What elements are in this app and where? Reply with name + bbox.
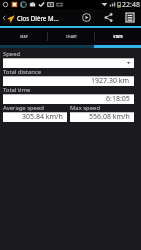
staticText: STATS [113,34,123,38]
button[interactable]: 305.84 km/h [3,112,67,122]
staticText: 22:48 [122,0,140,9]
button[interactable] [3,58,134,68]
staticText: CHART [66,34,77,38]
staticText: 1927.30 km [91,76,130,86]
button[interactable]: 556.08 km/h [70,112,134,122]
staticText: Max speed [70,104,101,112]
button[interactable]: 1927.30 km [3,76,134,86]
button[interactable]: Record [76,9,97,26]
button[interactable]: Share [97,9,119,26]
staticText: 6:18:05 [106,94,130,104]
staticText: Clos Dière M... [17,14,76,22]
button[interactable]: List [119,9,141,26]
staticText: Speed [3,50,21,58]
staticText: Total time [3,86,31,94]
button[interactable]: STATS [95,28,141,44]
staticText: 556.08 km/h [89,112,130,122]
staticText: MAP [20,34,28,38]
button[interactable]: MAP [0,28,47,44]
staticText: Average speed [3,104,44,112]
button[interactable]: CHART [48,28,94,44]
staticText: 305.84 km/h [22,112,63,122]
button[interactable]: 6:18:05 [3,94,134,104]
staticText: Total distance [3,68,42,76]
button[interactable]: Navigate up [0,9,16,26]
